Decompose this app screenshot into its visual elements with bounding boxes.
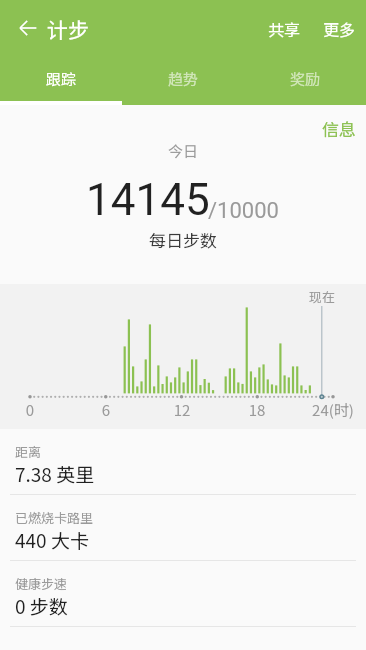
staticText: 信息 [322,116,356,141]
staticText: 距离 [15,442,42,461]
button[interactable]: 共享 [257,0,312,56]
staticText: 14145 [86,174,210,226]
staticText: 6 [76,399,136,421]
staticText: 7.38 英里 [15,460,95,488]
staticText: 健康步速 [15,574,68,593]
staticText: 今日 [0,140,366,162]
staticText: 奖励 [290,68,321,90]
button[interactable]: 健康步速 [0,561,366,627]
button[interactable]: Back [4,4,52,52]
staticText: 12 [152,399,212,421]
staticText: 现在 [292,287,352,306]
staticText: 440 大卡 [15,526,89,554]
staticText: 已燃烧卡路里 [15,508,94,527]
button[interactable]: 趋势 [122,56,244,105]
staticText: 更多 [323,17,356,40]
staticText: 0 [0,399,60,421]
button[interactable]: 距离 [0,429,366,495]
button[interactable]: 奖励 [244,56,366,105]
staticText: 趋势 [168,68,199,90]
staticText: 24(时) [303,399,363,421]
staticText: 每日步数 [0,227,366,252]
staticText: 共享 [268,17,301,40]
button[interactable]: 已燃烧卡路里 [0,495,366,561]
staticText: 计步 [47,14,89,44]
button[interactable]: 更多 [312,0,366,56]
staticText: 0 步数 [15,592,68,620]
button[interactable]: 跟踪 [0,56,122,105]
button[interactable]: 信息 [312,108,366,149]
staticText: /10000 [208,198,279,224]
staticText: 跟踪 [46,68,77,90]
staticText: 18 [227,399,287,421]
